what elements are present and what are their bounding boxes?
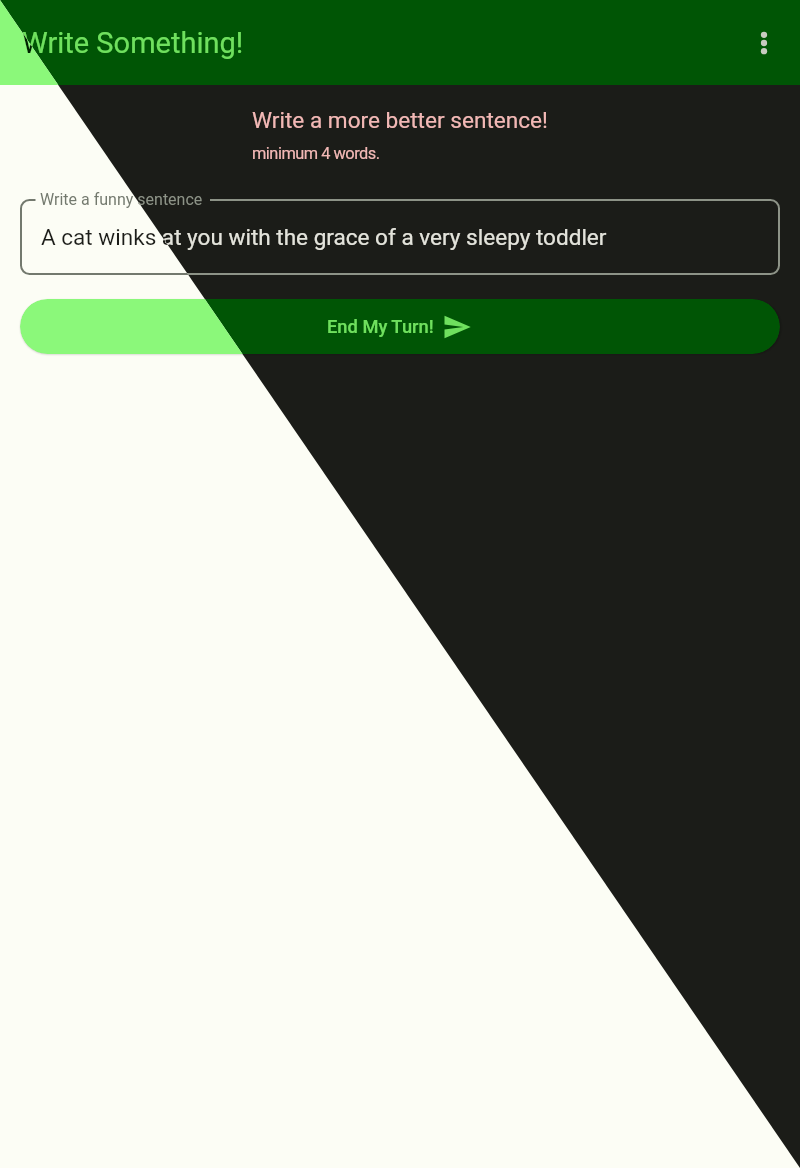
button[interactable]: End My Turn! xyxy=(20,299,780,354)
staticText: Write Something! xyxy=(22,26,244,60)
staticText: End My Turn! xyxy=(327,316,434,337)
staticText: minimum 4 words. xyxy=(252,144,380,163)
staticText: A cat winks at you with the grace of a v… xyxy=(41,224,607,250)
staticText: Write a more better sentence! xyxy=(252,107,548,133)
staticText: Write a funny sentence xyxy=(40,190,203,209)
button[interactable]: A cat winks at you with the grace of a v… xyxy=(21,200,779,274)
staticText: End My Turn! xyxy=(327,316,434,337)
staticText: Write a more better sentence! xyxy=(252,107,548,133)
staticText: minimum 4 words. xyxy=(252,144,380,163)
button[interactable]: More options xyxy=(736,15,792,71)
staticText: A cat winks at you with the grace of a v… xyxy=(41,224,607,250)
staticText: Write a funny sentence xyxy=(40,190,203,209)
staticText: Write Something! xyxy=(22,26,244,60)
